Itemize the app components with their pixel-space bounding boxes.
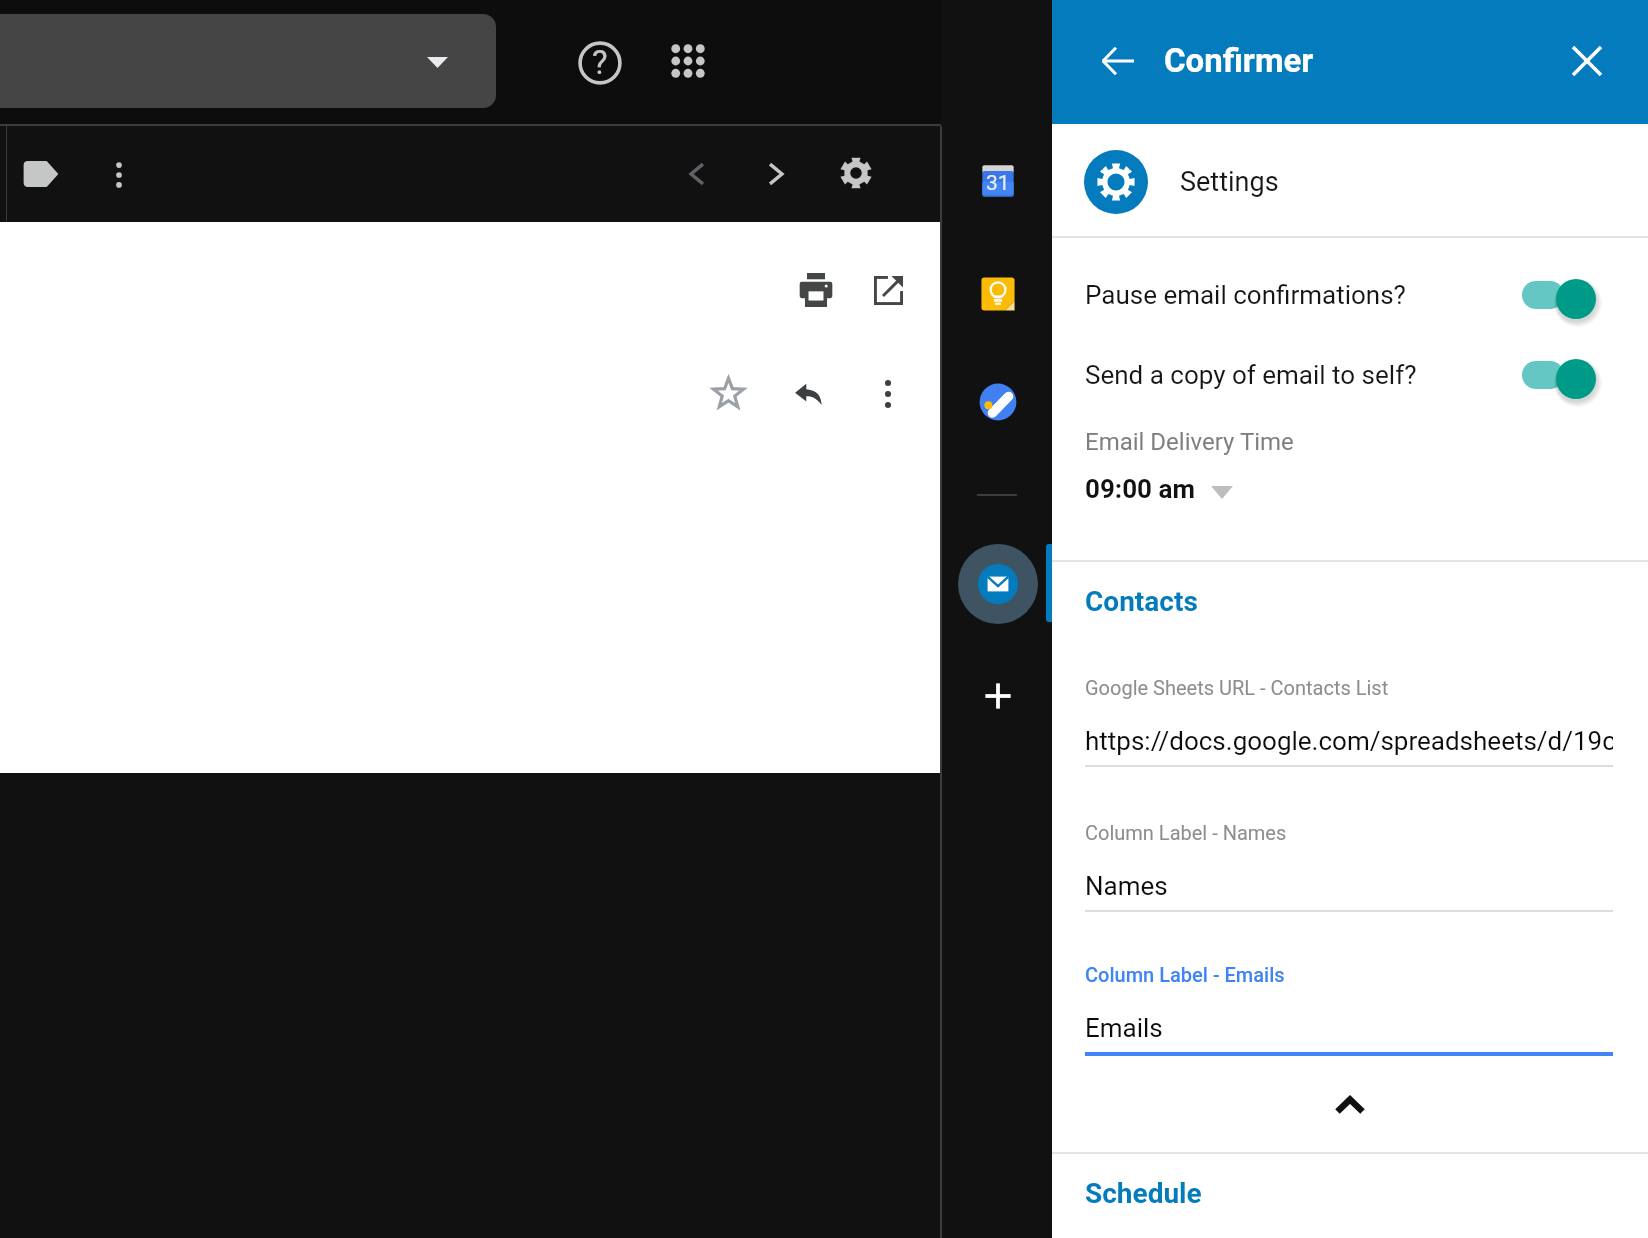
button[interactable]: Settings	[840, 157, 872, 189]
staticText: https://docs.google.com/spreadsheets/d/1…	[1085, 726, 1613, 756]
button[interactable]: Close	[1559, 33, 1615, 89]
button[interactable]: Pause email confirmations?	[1052, 261, 1648, 329]
button[interactable]: Print	[799, 273, 833, 307]
button[interactable]: Google Tasks	[975, 379, 1021, 425]
staticText: 09:00 am	[1085, 474, 1195, 504]
button[interactable]: Collapse	[1300, 1080, 1400, 1130]
button[interactable]: Star	[711, 376, 746, 411]
button[interactable]: Back	[1090, 33, 1146, 89]
button[interactable]: Settings	[1052, 124, 1648, 237]
staticText: Email Delivery Time	[1085, 428, 1294, 456]
button[interactable]: Support	[576, 39, 624, 87]
staticText: Column Label - Names	[1085, 821, 1287, 844]
staticText: Confirmer	[1164, 41, 1314, 80]
button[interactable]: More	[872, 378, 904, 410]
button[interactable]: Send a copy of email to self?	[1052, 341, 1648, 409]
button[interactable]: Labels	[18, 151, 64, 197]
button[interactable]: Google Sheets URL - Contacts List	[1085, 666, 1613, 784]
button[interactable]: Column Label - Names	[1085, 811, 1613, 929]
button[interactable]: Newer	[674, 151, 720, 197]
button[interactable]: Google Calendar	[975, 158, 1021, 204]
button[interactable]: Search mail	[0, 14, 496, 108]
staticText: Send a copy of email to self?	[1085, 360, 1417, 390]
button[interactable]: Open in new window	[874, 276, 903, 305]
staticText: Pause email confirmations?	[1085, 280, 1406, 310]
staticText: ?	[592, 43, 608, 82]
button[interactable]: Email delivery time 09:00 am	[1085, 468, 1245, 508]
staticText: Settings	[1180, 166, 1279, 198]
button[interactable]: Reply	[791, 377, 825, 411]
button[interactable]: Confirmer add-on	[958, 544, 1038, 624]
button[interactable]: Get add-ons	[975, 673, 1021, 719]
button[interactable]: Google apps	[664, 37, 712, 85]
button[interactable]: Column Label - Emails	[1085, 953, 1613, 1071]
button[interactable]: Older	[753, 151, 799, 197]
staticText: Google Sheets URL - Contacts List	[1085, 676, 1389, 699]
staticText: Emails	[1085, 1013, 1613, 1043]
staticText: Column Label - Emails	[1085, 963, 1285, 986]
staticText: 31	[986, 171, 1010, 196]
staticText: Names	[1085, 871, 1613, 901]
staticText: Contacts	[1085, 585, 1198, 618]
button[interactable]: Google Keep	[975, 271, 1021, 317]
staticText: Schedule	[1085, 1177, 1202, 1210]
button[interactable]: More options	[104, 160, 134, 190]
